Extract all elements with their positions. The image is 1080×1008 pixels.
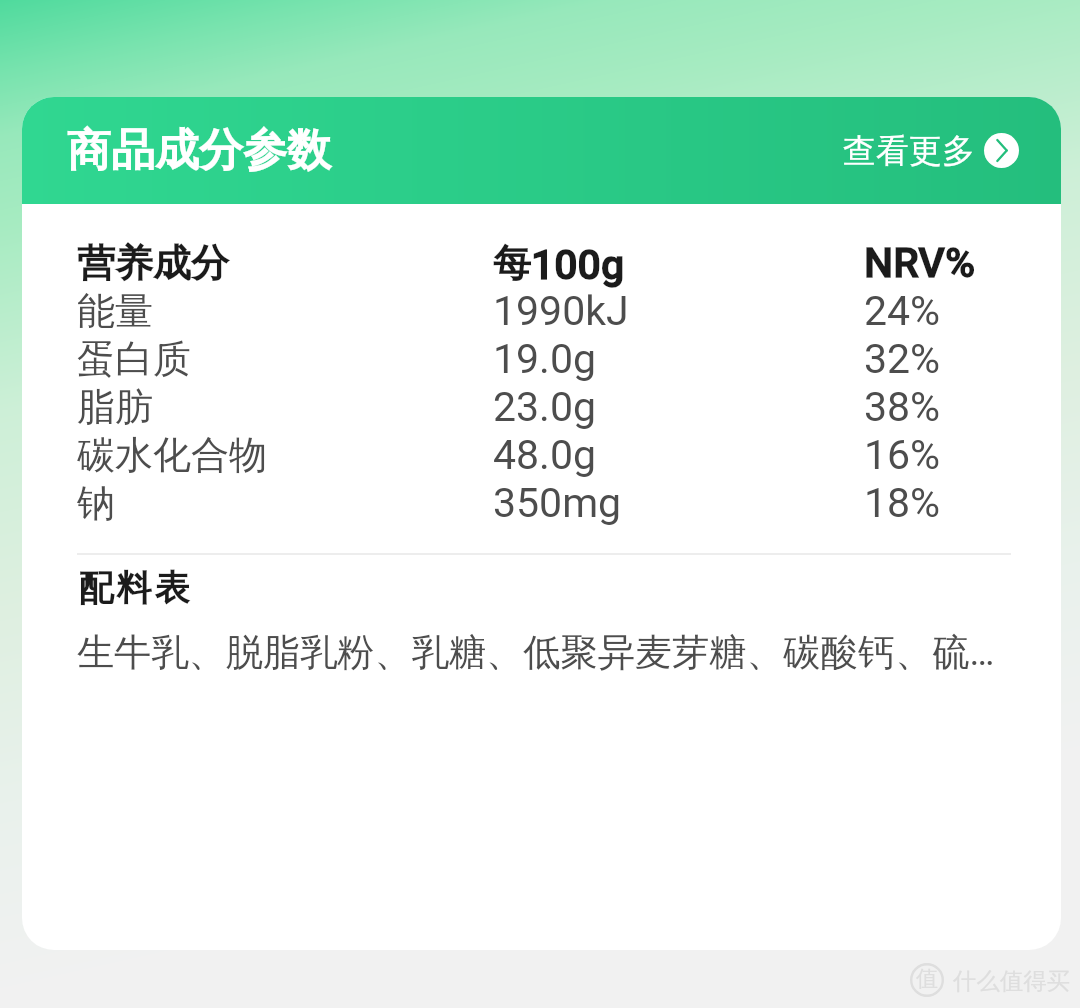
staticText: 什么值得买 [953,966,1070,995]
staticText: 16% [864,431,941,479]
staticText: 生牛乳、脱脂乳粉、乳糖、低聚异麦芽糖、碳酸钙、硫… [77,629,995,676]
staticText: 查看更多 [843,130,975,172]
staticText: NRV% [864,239,976,287]
staticText: 能量 [77,287,153,335]
staticText: 350mg [493,479,622,527]
staticText: 1990kJ [493,287,629,335]
other: 查看更多 [984,133,1019,168]
staticText: 19.0g [493,335,596,383]
staticText: 营养成分 [77,239,229,287]
staticText: 32% [864,335,941,383]
staticText: 脂肪 [77,383,153,431]
staticText: 每 [493,239,531,287]
staticText: 38% [864,383,941,431]
staticText: 48.0g [493,431,596,479]
staticText: 碳水化合物 [77,431,267,479]
staticText: 23.0g [493,383,596,431]
staticText: 值 [916,965,938,993]
staticText: 24% [864,287,941,335]
button[interactable]: 商品成分参数 [22,97,1061,204]
staticText: 商品成分参数 [67,123,331,178]
staticText: 100g [531,241,625,289]
staticText: 配料表 [77,566,191,610]
staticText: 18% [864,479,941,527]
staticText: 钠 [77,479,115,527]
staticText: 蛋白质 [77,335,191,383]
